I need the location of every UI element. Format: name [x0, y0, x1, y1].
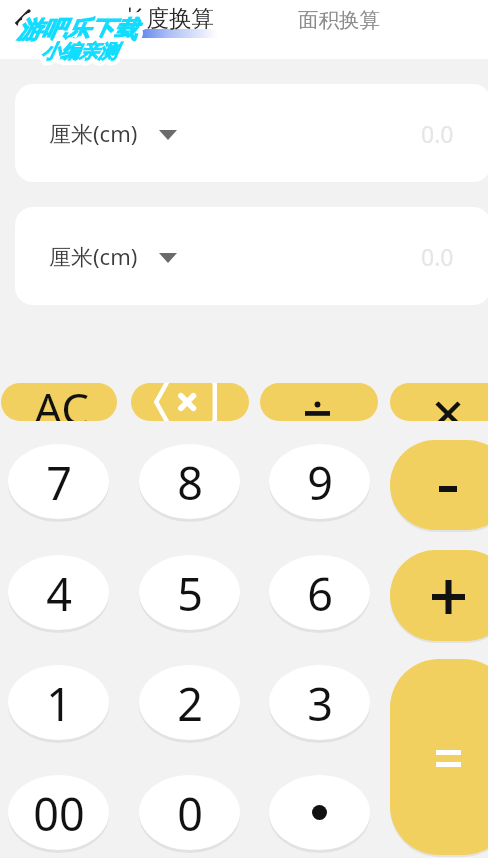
staticText: 6 — [307, 563, 333, 624]
staticText: 小编亲测 — [41, 40, 117, 64]
staticText: 0.0 — [421, 241, 454, 272]
button[interactable]: Multiply — [390, 383, 488, 421]
button[interactable]: 00 — [8, 775, 109, 850]
staticText: 游吧乐下载 — [17, 15, 137, 45]
staticText: 长度换算 — [124, 4, 214, 32]
staticText: 游吧乐下载 — [17, 15, 137, 45]
button[interactable]: 厘米(cm) — [15, 207, 488, 305]
staticText: 00 — [33, 783, 85, 844]
staticText: 3 — [307, 673, 333, 734]
button[interactable]: 6 — [269, 555, 370, 630]
button[interactable]: 8 — [139, 444, 240, 519]
staticText: 面积换算 — [298, 7, 380, 33]
button[interactable]: 厘米(cm) — [15, 84, 488, 182]
button[interactable]: Backspace — [131, 383, 249, 421]
staticText: 1 — [46, 673, 72, 734]
staticText: AC — [34, 383, 90, 421]
button[interactable]: 1 — [8, 665, 109, 740]
button[interactable]: Equals — [390, 659, 488, 855]
button[interactable]: Divide — [260, 383, 378, 421]
staticText: 9 — [307, 452, 333, 513]
staticText: 0 — [177, 783, 203, 844]
button[interactable]: Decimal point — [269, 775, 370, 850]
button[interactable]: 面积换算 — [298, 7, 380, 33]
staticText: 厘米(cm) — [49, 241, 138, 271]
button[interactable]: 4 — [8, 555, 109, 630]
button[interactable]: 长度换算 — [124, 4, 214, 32]
button[interactable]: Back — [6, 6, 40, 40]
button[interactable]: Plus — [390, 550, 488, 641]
staticText: 4 — [46, 563, 72, 624]
staticText: 0.0 — [421, 118, 454, 149]
button[interactable]: Minus — [390, 440, 488, 530]
staticText: 小编亲测 — [41, 40, 117, 64]
staticText: 2 — [177, 673, 203, 734]
button[interactable]: 2 — [139, 665, 240, 740]
button[interactable]: 0 — [139, 775, 240, 850]
staticText: 7 — [46, 452, 72, 513]
staticText: 5 — [177, 563, 203, 624]
button[interactable]: 7 — [8, 444, 109, 519]
button[interactable]: 9 — [269, 444, 370, 519]
staticText: 厘米(cm) — [49, 118, 138, 148]
button[interactable]: 5 — [139, 555, 240, 630]
button[interactable]: Clear all — [1, 383, 117, 421]
button[interactable]: 3 — [269, 665, 370, 740]
staticText: 8 — [177, 452, 203, 513]
